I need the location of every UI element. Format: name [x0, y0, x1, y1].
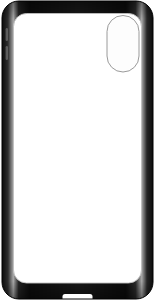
button[interactable]: Transparent phone case with black bumper [0, 0, 155, 300]
